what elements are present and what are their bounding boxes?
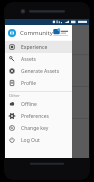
staticText: Profile — [21, 80, 37, 87]
button[interactable]: Change key — [5, 122, 72, 134]
staticText: Offline — [21, 101, 37, 108]
button[interactable]: Preferences — [5, 110, 72, 122]
button[interactable]: Assets — [5, 53, 72, 65]
button[interactable]: Offline — [5, 98, 72, 110]
button[interactable]: Community — [5, 25, 72, 40]
staticText: Log Out — [21, 137, 40, 144]
staticText: Generate Assets — [21, 68, 60, 75]
staticText: Other — [9, 93, 20, 98]
button[interactable]: Generate Assets — [5, 65, 72, 77]
staticText: Experience — [21, 44, 48, 51]
staticText: Preferences — [21, 113, 49, 120]
button[interactable]: Brand logo — [53, 28, 69, 37]
button[interactable]: Profile — [5, 77, 72, 89]
button[interactable]: Experience — [5, 41, 72, 53]
staticText: Community — [20, 29, 53, 37]
staticText: Change key — [21, 125, 49, 132]
button[interactable]: Log Out — [5, 134, 72, 146]
staticText: Assets — [21, 56, 37, 63]
